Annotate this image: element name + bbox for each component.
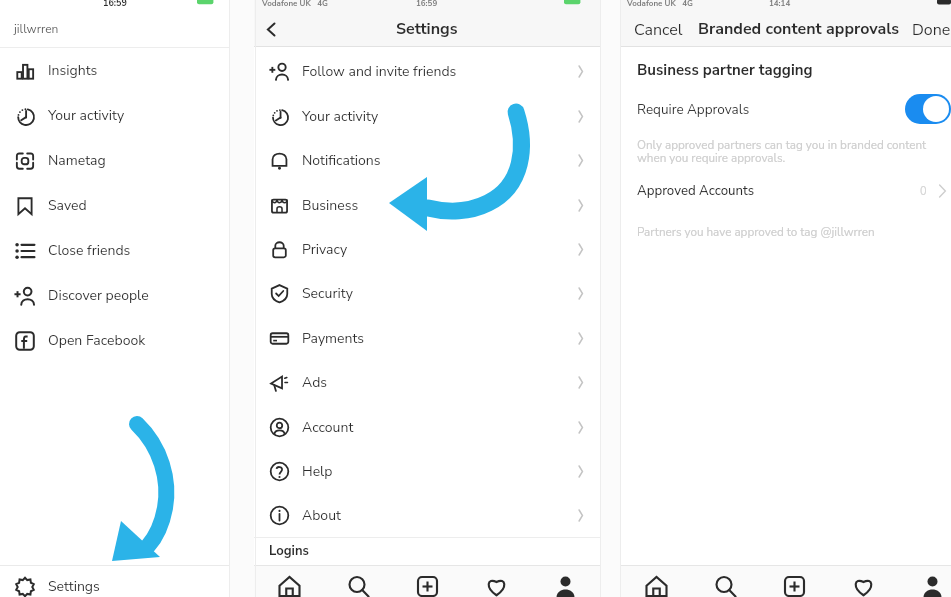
staticText: Notifications: [302, 151, 381, 170]
button[interactable]: Activity: [829, 566, 898, 597]
button[interactable]: Approved Accounts: [621, 176, 951, 206]
button[interactable]: Insights: [0, 48, 229, 93]
staticText: Require Approvals: [637, 100, 750, 118]
staticText: Logins: [269, 542, 309, 560]
staticText: Help: [302, 462, 333, 481]
staticText: Done: [912, 19, 951, 39]
staticText: About: [302, 506, 341, 525]
staticText: 16:59: [416, 0, 438, 9]
staticText: Business: [302, 196, 359, 215]
button[interactable]: Business: [254, 183, 600, 227]
button[interactable]: Search: [691, 566, 760, 597]
button[interactable]: Follow and invite friends: [254, 49, 600, 93]
button[interactable]: Help: [254, 449, 600, 493]
staticText: 0: [920, 184, 927, 199]
button[interactable]: Saved: [0, 183, 229, 228]
button[interactable]: About: [254, 493, 600, 537]
button[interactable]: Profile: [898, 566, 951, 597]
staticText: Settings: [48, 577, 100, 596]
button[interactable]: Payments: [254, 316, 600, 360]
button[interactable]: Notifications: [254, 138, 600, 182]
staticText: Your activity: [302, 107, 379, 126]
staticText: Your activity: [48, 106, 125, 125]
staticText: Discover people: [48, 286, 149, 305]
staticText: Insights: [48, 61, 98, 80]
button[interactable]: Close friends: [0, 228, 229, 273]
button[interactable]: Add post: [393, 566, 462, 597]
staticText: Cancel: [634, 19, 683, 39]
staticText: Open Facebook: [48, 331, 146, 350]
staticText: Security: [302, 284, 353, 303]
button[interactable]: Privacy: [254, 227, 600, 271]
button[interactable]: Your activity: [0, 93, 229, 138]
button[interactable]: Home: [621, 566, 691, 597]
button[interactable]: Activity: [462, 566, 531, 597]
staticText: Ads: [302, 373, 328, 392]
button[interactable]: Back: [254, 12, 288, 46]
button[interactable]: Account: [254, 405, 600, 449]
button[interactable]: Nametag: [0, 138, 229, 183]
staticText: Business partner tagging: [637, 60, 813, 80]
button[interactable]: Require Approvals: [621, 94, 951, 124]
staticText: Follow and invite friends: [302, 62, 457, 81]
button[interactable]: Done: [900, 12, 951, 46]
button[interactable]: Open Facebook: [0, 318, 229, 363]
staticText: Account: [302, 418, 354, 437]
button[interactable]: jillwrren: [0, 12, 229, 46]
staticText: Close friends: [48, 241, 131, 260]
staticText: Saved: [48, 196, 87, 215]
staticText: Payments: [302, 329, 365, 348]
button[interactable]: Search: [324, 566, 393, 597]
button[interactable]: Add post: [760, 566, 829, 597]
staticText: Approved Accounts: [637, 182, 755, 200]
staticText: Partners you have approved to tag @jillw…: [637, 224, 875, 240]
button[interactable]: Security: [254, 271, 600, 315]
staticText: Only approved partners can tag you in br…: [637, 137, 927, 166]
button[interactable]: Profile: [531, 566, 600, 597]
staticText: Branded content approvals: [698, 18, 900, 40]
staticText: 14:14: [769, 0, 791, 9]
staticText: 16:59: [103, 0, 127, 9]
button[interactable]: Home: [254, 566, 324, 597]
button[interactable]: Discover people: [0, 273, 229, 318]
staticText: Vodafone UK 4G: [262, 0, 328, 9]
staticText: Vodafone UK 4G: [627, 0, 693, 9]
staticText: jillwrren: [14, 21, 59, 37]
staticText: Nametag: [48, 151, 106, 170]
button[interactable]: Your activity: [254, 94, 600, 138]
staticText: Settings: [396, 18, 458, 40]
staticText: Privacy: [302, 240, 348, 259]
button[interactable]: Ads: [254, 360, 600, 404]
button[interactable]: Cancel: [621, 12, 696, 46]
button[interactable]: Settings: [0, 566, 229, 597]
